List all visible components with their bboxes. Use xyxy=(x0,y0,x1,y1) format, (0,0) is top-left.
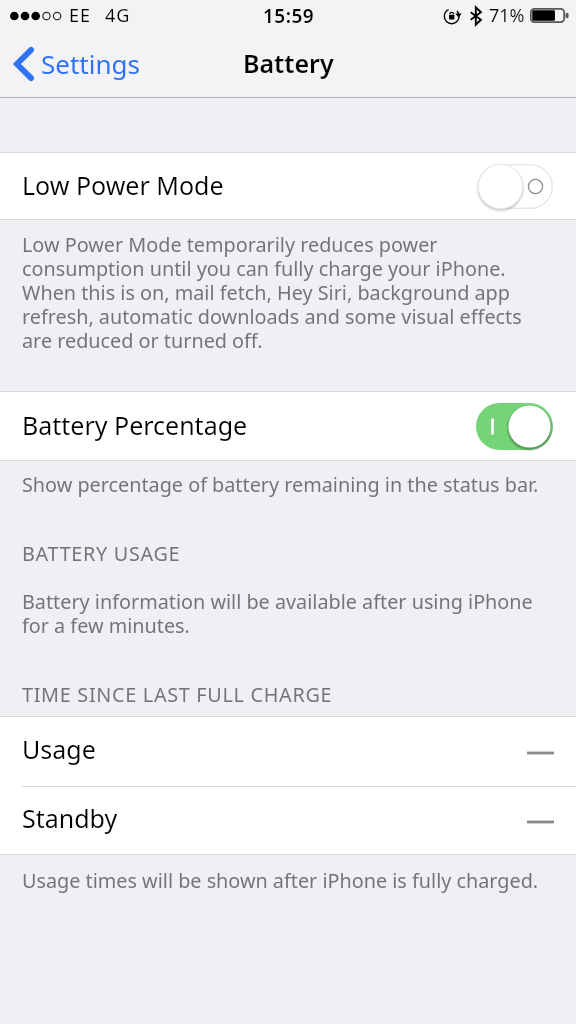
staticText: EE xyxy=(69,3,92,28)
staticText: Show percentage of battery remaining in … xyxy=(22,471,539,498)
staticText: Standby xyxy=(22,801,118,835)
other: Rotation lock xyxy=(444,7,463,25)
button[interactable]: Standby xyxy=(0,786,576,855)
button[interactable]: Usage xyxy=(0,717,576,786)
button[interactable]: Low Power Mode xyxy=(0,153,576,220)
button[interactable]: Battery Percentage on xyxy=(476,403,553,450)
staticText: Usage xyxy=(22,732,96,766)
staticText: BATTERY USAGE xyxy=(22,540,181,567)
staticText: 71% xyxy=(489,3,525,28)
button[interactable]: Battery Percentage xyxy=(0,392,576,461)
staticText: Usage times will be shown after iPhone i… xyxy=(22,867,539,894)
staticText: 4G xyxy=(105,3,131,28)
button[interactable]: Low Power Mode off xyxy=(478,164,553,209)
staticText: TIME SINCE LAST FULL CHARGE xyxy=(22,681,333,708)
button[interactable]: Settings xyxy=(0,40,150,87)
staticText: Battery Percentage xyxy=(22,408,248,442)
staticText: 15:59 xyxy=(263,3,315,29)
staticText: Low Power Mode xyxy=(22,168,224,202)
other: Bluetooth xyxy=(470,7,482,25)
staticText: Settings xyxy=(41,46,140,81)
staticText: Low Power Mode temporarily reduces power… xyxy=(22,231,534,354)
staticText: Battery xyxy=(243,46,334,80)
staticText: Battery information will be available af… xyxy=(22,588,539,639)
